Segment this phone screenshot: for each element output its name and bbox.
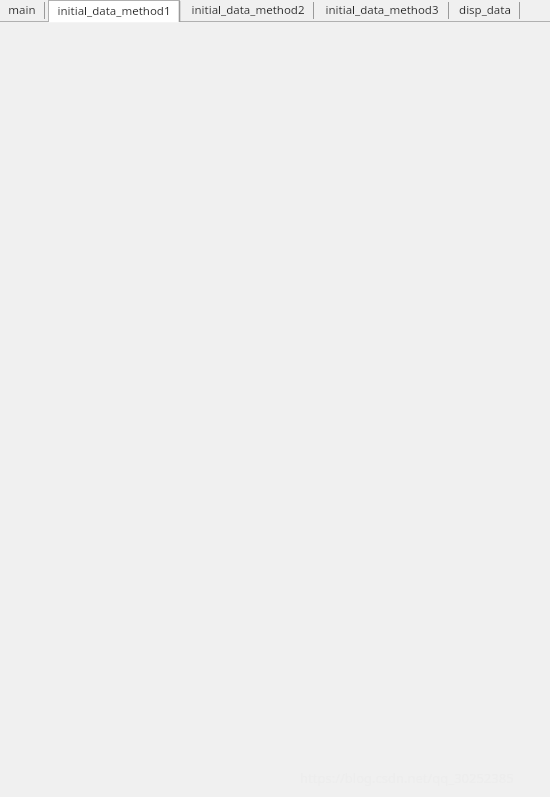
- staticText: main: [8, 2, 36, 18]
- button[interactable]: main: [0, 0, 44, 20]
- staticText: disp_data: [459, 2, 511, 18]
- staticText: initial_data_method1: [57, 3, 171, 19]
- button[interactable]: initial_data_method2: [183, 0, 313, 20]
- button[interactable]: initial_data_method3: [316, 0, 448, 20]
- staticText: initial_data_method2: [191, 2, 305, 18]
- button[interactable]: disp_data: [451, 0, 519, 20]
- button[interactable]: initial_data_method1: [48, 0, 180, 22]
- staticText: initial_data_method3: [325, 2, 439, 18]
